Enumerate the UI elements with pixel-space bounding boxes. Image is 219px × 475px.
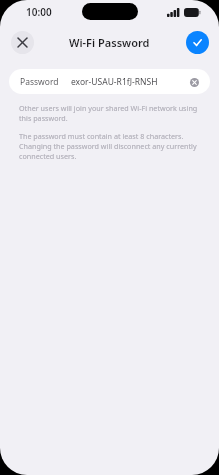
staticText: exor-USAU-R1fJ-RNSH bbox=[71, 76, 158, 88]
button[interactable]: Confirm bbox=[186, 31, 209, 54]
staticText: 10:00 bbox=[26, 5, 52, 19]
button[interactable]: Password bbox=[9, 69, 210, 94]
staticText: Wi-Fi Password bbox=[69, 35, 150, 50]
button[interactable]: Close bbox=[11, 31, 34, 54]
button[interactable]: Clear text bbox=[187, 75, 201, 89]
staticText: Other users will join your shared Wi-Fi … bbox=[19, 103, 200, 123]
staticText: The password must contain at least 8 cha… bbox=[19, 131, 200, 161]
staticText: Password bbox=[20, 76, 59, 88]
